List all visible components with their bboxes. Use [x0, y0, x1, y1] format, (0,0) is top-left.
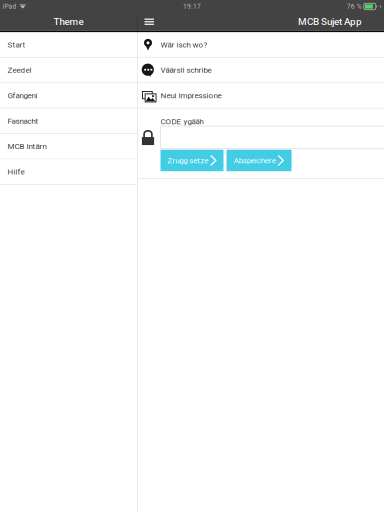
- staticText: 19:17: [183, 3, 201, 10]
- staticText: Abspeichere: [234, 156, 276, 165]
- staticText: Zeedel: [7, 65, 31, 75]
- staticText: Zrugg setze: [167, 156, 208, 165]
- button[interactable]: Start: [0, 32, 137, 58]
- staticText: Wär isch wo?: [160, 40, 207, 49]
- button[interactable]: Menu: [138, 13, 160, 30]
- staticText: Väärsli schribe: [160, 65, 211, 75]
- staticText: Start: [7, 40, 25, 49]
- staticText: Theme: [53, 16, 83, 28]
- button[interactable]: Väärsli schribe: [138, 58, 384, 83]
- button[interactable]: Zeedel: [0, 58, 137, 83]
- button[interactable]: MCB Intärn: [0, 134, 137, 159]
- button[interactable]: Fasnacht: [0, 109, 137, 134]
- button[interactable]: Hilfe: [0, 159, 137, 185]
- staticText: CODE ygääh: [160, 117, 203, 126]
- staticText: Hilfe: [7, 167, 24, 176]
- button[interactable]: Gfangeni: [0, 83, 137, 109]
- button[interactable]: Wär isch wo?: [138, 32, 384, 58]
- staticText: MCB Sujet App: [298, 16, 362, 28]
- staticText: MCB Intärn: [7, 142, 46, 151]
- staticText: 76 %: [347, 3, 362, 10]
- staticText: Neui Impressione: [160, 91, 221, 100]
- button[interactable]: Abspeichere: [226, 150, 291, 171]
- button[interactable]: Neui Impressione: [138, 83, 384, 109]
- button[interactable]: Zrugg setze: [160, 150, 223, 171]
- staticText: Gfangeni: [7, 91, 37, 100]
- staticText: Fasnacht: [7, 116, 38, 126]
- staticText: iPad: [2, 3, 16, 10]
